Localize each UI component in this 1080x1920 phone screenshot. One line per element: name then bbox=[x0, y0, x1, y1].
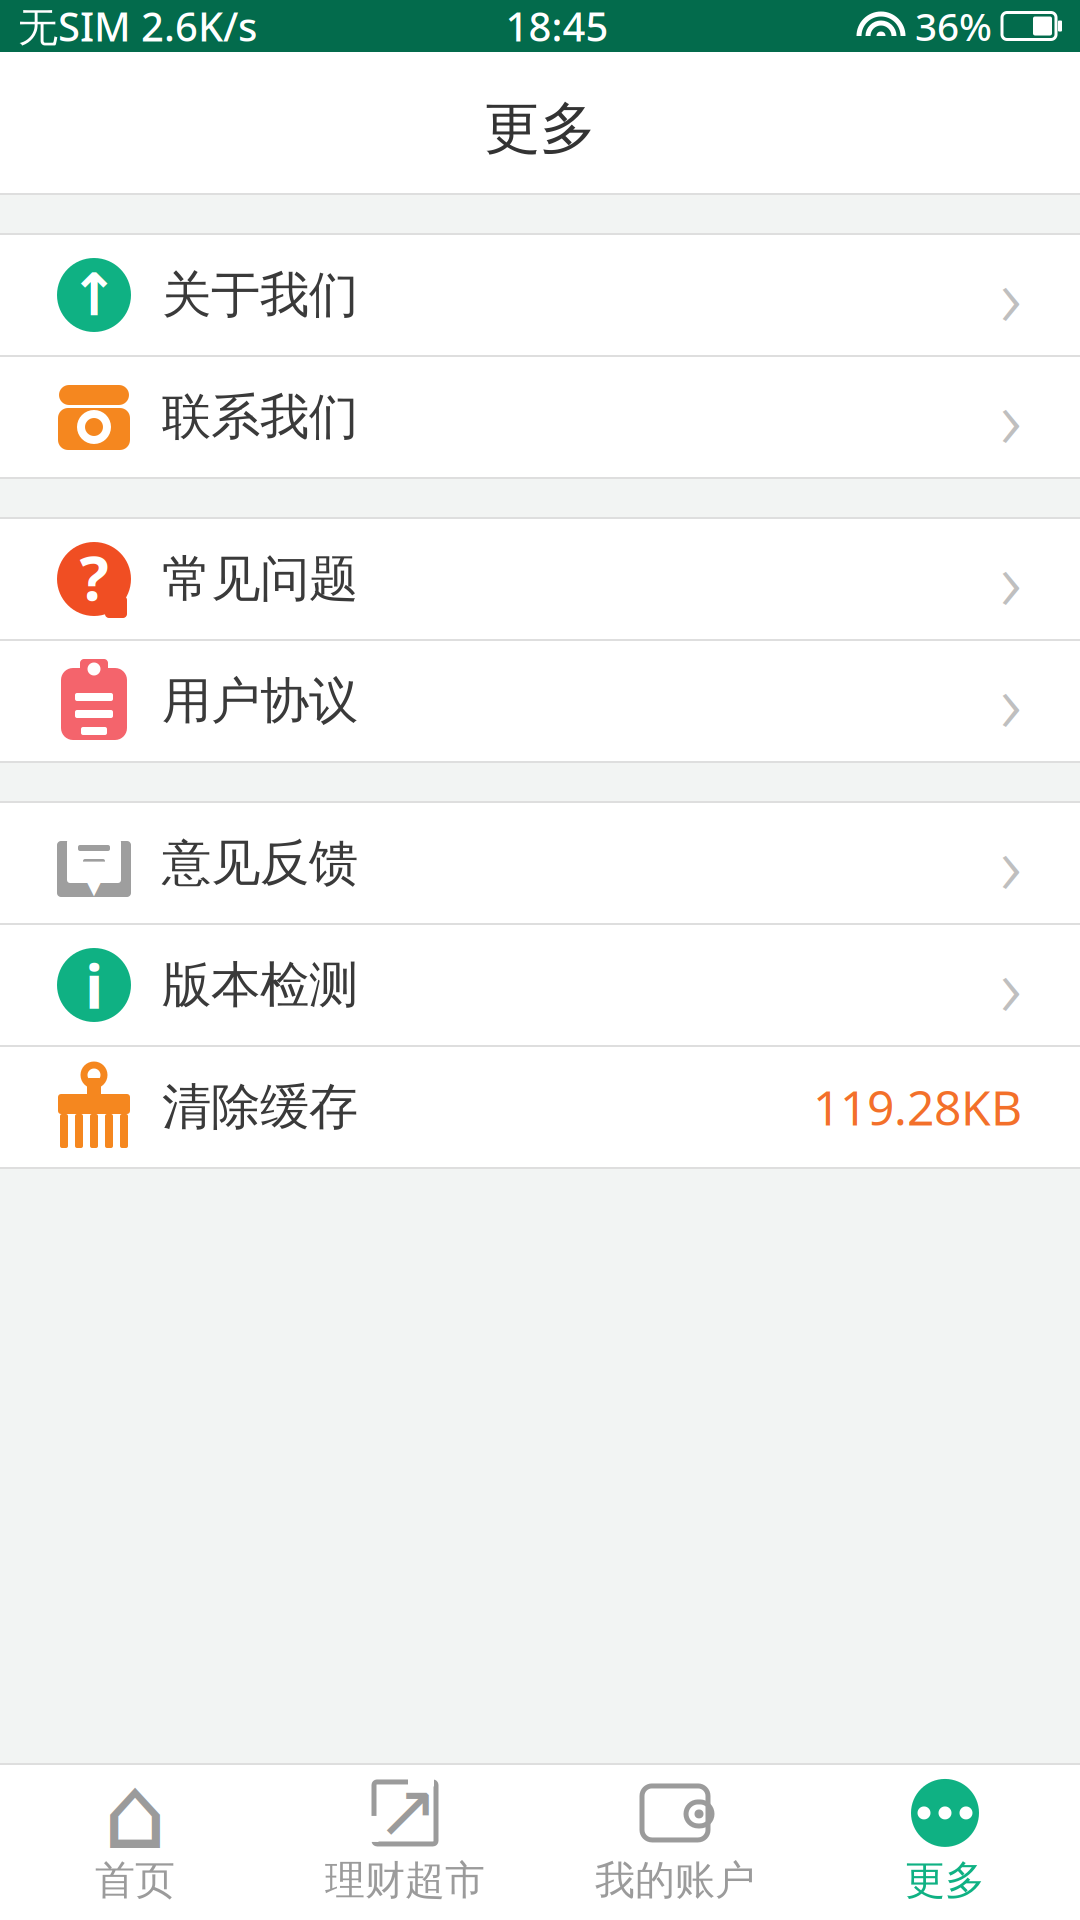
staticText: › bbox=[1000, 646, 1022, 756]
staticText: 关于我们 bbox=[162, 265, 358, 325]
button[interactable]: ⌂ bbox=[0, 1765, 270, 1920]
staticText: 我的账户 bbox=[595, 1856, 755, 1905]
button[interactable]: i bbox=[0, 925, 1080, 1045]
staticText: 常见问题 bbox=[162, 549, 358, 609]
staticText: i bbox=[85, 944, 103, 1026]
staticText: › bbox=[1000, 240, 1022, 350]
staticText: 联系我们 bbox=[162, 387, 358, 447]
staticText: › bbox=[1000, 808, 1022, 918]
button[interactable]: 用户协议 bbox=[0, 641, 1080, 761]
staticText: 意见反馈 bbox=[162, 833, 358, 893]
button[interactable]: ↑ bbox=[0, 235, 1080, 355]
staticText: ? bbox=[79, 536, 108, 618]
staticText: 版本检测 bbox=[162, 955, 358, 1015]
staticText: 18:45 bbox=[505, 0, 608, 52]
staticText: 36% bbox=[915, 0, 992, 52]
button[interactable]: 我的账户 bbox=[540, 1765, 810, 1920]
staticText: 理财超市 bbox=[325, 1856, 485, 1905]
staticText: › bbox=[1000, 524, 1022, 634]
staticText: 首页 bbox=[95, 1856, 175, 1905]
staticText: › bbox=[1000, 930, 1022, 1040]
staticText: ↑ bbox=[69, 262, 118, 328]
button[interactable]: 联系我们 bbox=[0, 357, 1080, 477]
staticText: › bbox=[1000, 362, 1022, 472]
staticText: 用户协议 bbox=[162, 671, 358, 731]
button[interactable]: ▼ bbox=[0, 803, 1080, 923]
button[interactable]: 清除缓存 bbox=[0, 1047, 1080, 1167]
staticText: 更多 bbox=[905, 1856, 985, 1905]
staticText: ▼ bbox=[76, 849, 111, 901]
button[interactable]: 更多 bbox=[810, 1765, 1080, 1920]
button[interactable]: ? bbox=[0, 519, 1080, 639]
staticText: ⌂ bbox=[103, 1755, 167, 1870]
staticText: 更多 bbox=[484, 94, 596, 163]
staticText: 清除缓存 bbox=[162, 1077, 358, 1137]
button[interactable]: ↗ bbox=[270, 1765, 540, 1920]
staticText: 无SIM 2.6K/s bbox=[18, 0, 257, 52]
staticText: 119.28KB bbox=[813, 1075, 1022, 1139]
staticText: ↗ bbox=[376, 1769, 439, 1853]
